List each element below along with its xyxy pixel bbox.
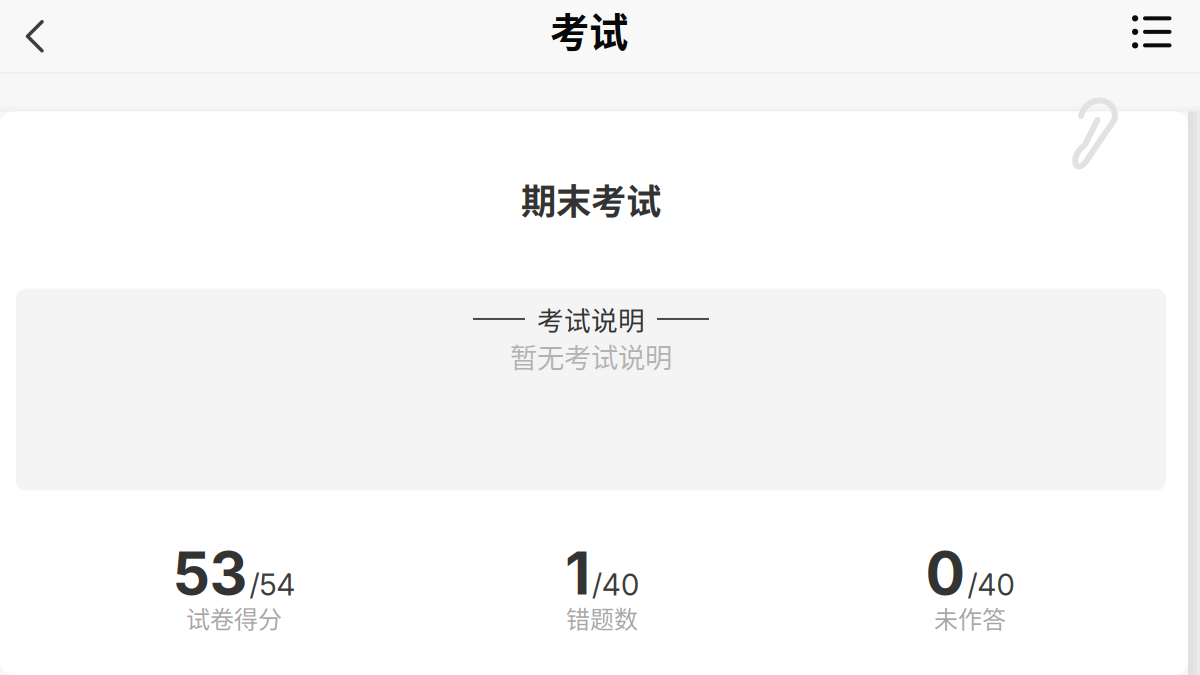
staticText: 未作答 — [934, 600, 1006, 635]
staticText: 试卷得分 — [186, 600, 282, 635]
staticText: 考试 — [550, 1, 628, 58]
staticText: 暂无考试说明 — [510, 336, 672, 376]
staticText: 1 — [565, 538, 590, 609]
staticText: /54 — [249, 567, 295, 603]
staticText: 考试说明 — [537, 300, 645, 338]
staticText: /40 — [592, 567, 639, 603]
staticText: 期末考试 — [521, 173, 661, 225]
button[interactable]: Question list — [1102, 1, 1200, 73]
staticText: 错题数 — [566, 600, 638, 635]
staticText: 53 — [172, 538, 247, 609]
button[interactable]: Back — [0, 1, 70, 73]
staticText: /40 — [967, 567, 1014, 603]
staticText: 0 — [925, 538, 965, 609]
